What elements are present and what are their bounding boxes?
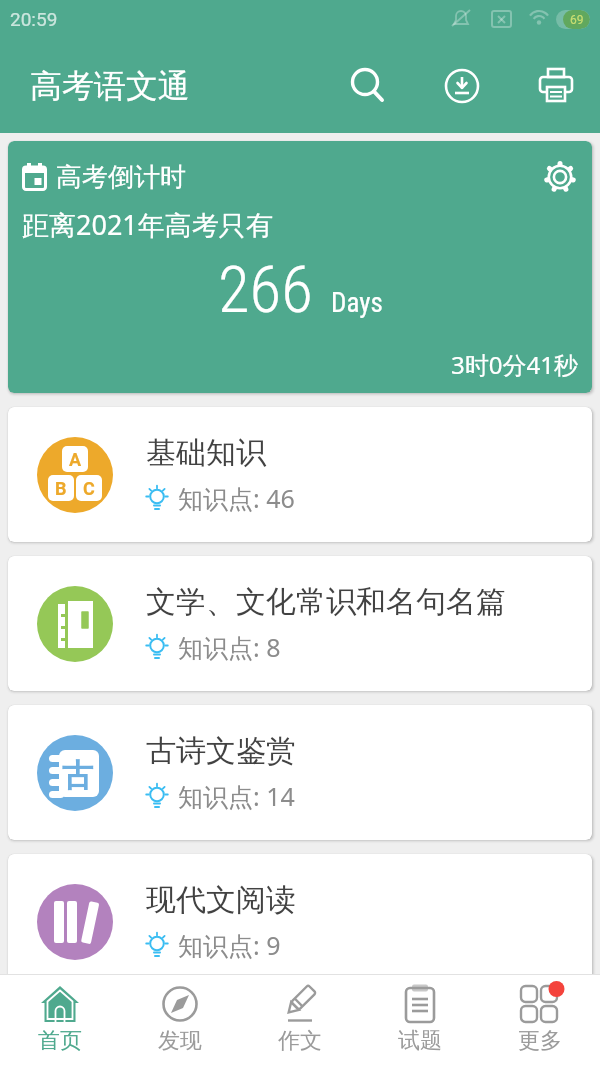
staticText: 高考倒计时: [56, 161, 186, 194]
staticText: 知识点: 8: [178, 630, 281, 664]
staticText: 高考语文通: [30, 66, 190, 106]
staticText: 发现: [158, 1027, 202, 1055]
staticText: A: [69, 449, 82, 470]
button[interactable]: 作文: [240, 975, 360, 1067]
button[interactable]: 更多: [480, 975, 600, 1067]
button[interactable]: 现代文阅读: [8, 854, 592, 989]
staticText: 基础知识: [146, 434, 266, 472]
staticText: 266: [218, 252, 313, 328]
staticText: 现代文阅读: [146, 881, 296, 919]
staticText: 知识点: 9: [178, 928, 281, 962]
staticText: 首页: [38, 1027, 82, 1055]
staticText: 距离2021年高考只有: [22, 206, 273, 243]
button[interactable]: 发现: [120, 975, 240, 1067]
button[interactable]: [536, 66, 576, 106]
staticText: 文学、文化常识和名句名篇: [146, 583, 506, 621]
button[interactable]: [442, 66, 482, 106]
button[interactable]: 首页: [0, 975, 120, 1067]
button[interactable]: A: [8, 407, 592, 542]
staticText: 更多: [518, 1027, 562, 1055]
button[interactable]: [542, 159, 578, 195]
staticText: 知识点: 46: [178, 481, 295, 515]
staticText: C: [83, 478, 95, 499]
staticText: 3时0分41秒: [451, 348, 578, 381]
button[interactable]: 文学、文化常识和名句名篇: [8, 556, 592, 691]
staticText: 知识点: 14: [178, 779, 295, 813]
staticText: 20:59: [10, 8, 58, 30]
staticText: Days: [331, 287, 383, 319]
button[interactable]: 古: [8, 705, 592, 840]
staticText: 古诗文鉴赏: [146, 732, 296, 770]
staticText: B: [55, 478, 67, 499]
staticText: 试题: [398, 1027, 442, 1055]
staticText: 古: [62, 756, 93, 795]
staticText: 作文: [278, 1027, 322, 1055]
staticText: 69: [570, 13, 584, 27]
button[interactable]: 高考倒计时: [8, 141, 592, 393]
button[interactable]: 试题: [360, 975, 480, 1067]
button[interactable]: [348, 66, 388, 106]
